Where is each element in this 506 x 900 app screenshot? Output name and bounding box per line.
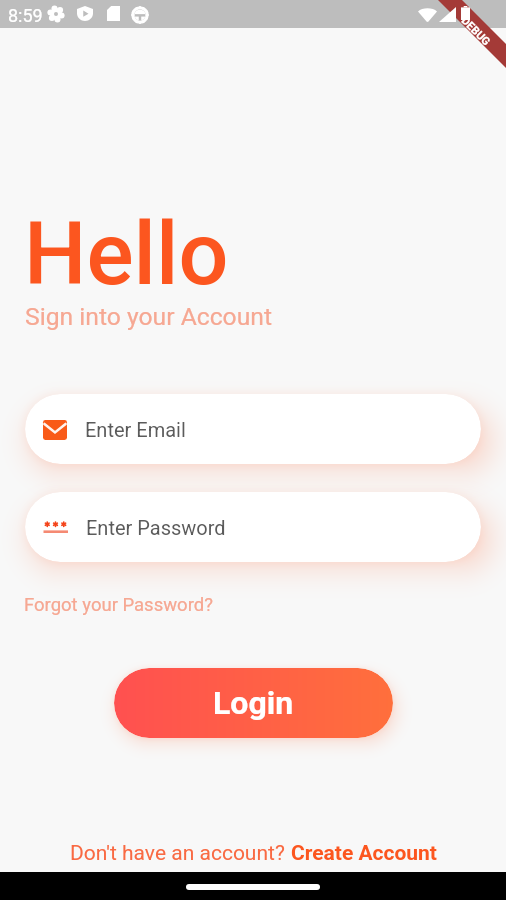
- button[interactable]: Password: [25, 492, 481, 562]
- staticText: Sign into your Account: [25, 302, 272, 331]
- staticText: Create Account: [291, 841, 437, 866]
- staticText: 8:59: [8, 5, 43, 26]
- staticText: Hello: [24, 202, 229, 305]
- staticText: Don't have an account?: [70, 841, 291, 866]
- button[interactable]: Email: [25, 394, 481, 464]
- other: Wifi: [418, 7, 437, 22]
- staticText: Enter Password: [86, 516, 226, 539]
- button[interactable]: Don't have an account?: [70, 841, 437, 866]
- button[interactable]: Forgot your Password?: [24, 594, 213, 616]
- other: Password: [43, 518, 68, 538]
- other: Developer options: [131, 6, 149, 24]
- staticText: Enter Email: [85, 418, 186, 441]
- staticText: DEBUG: [459, 14, 493, 49]
- other: Email: [43, 420, 67, 440]
- other: Signal: [439, 7, 456, 22]
- other: Settings: [48, 6, 64, 22]
- staticText: Login: [213, 684, 294, 722]
- button[interactable]: Login: [114, 668, 393, 738]
